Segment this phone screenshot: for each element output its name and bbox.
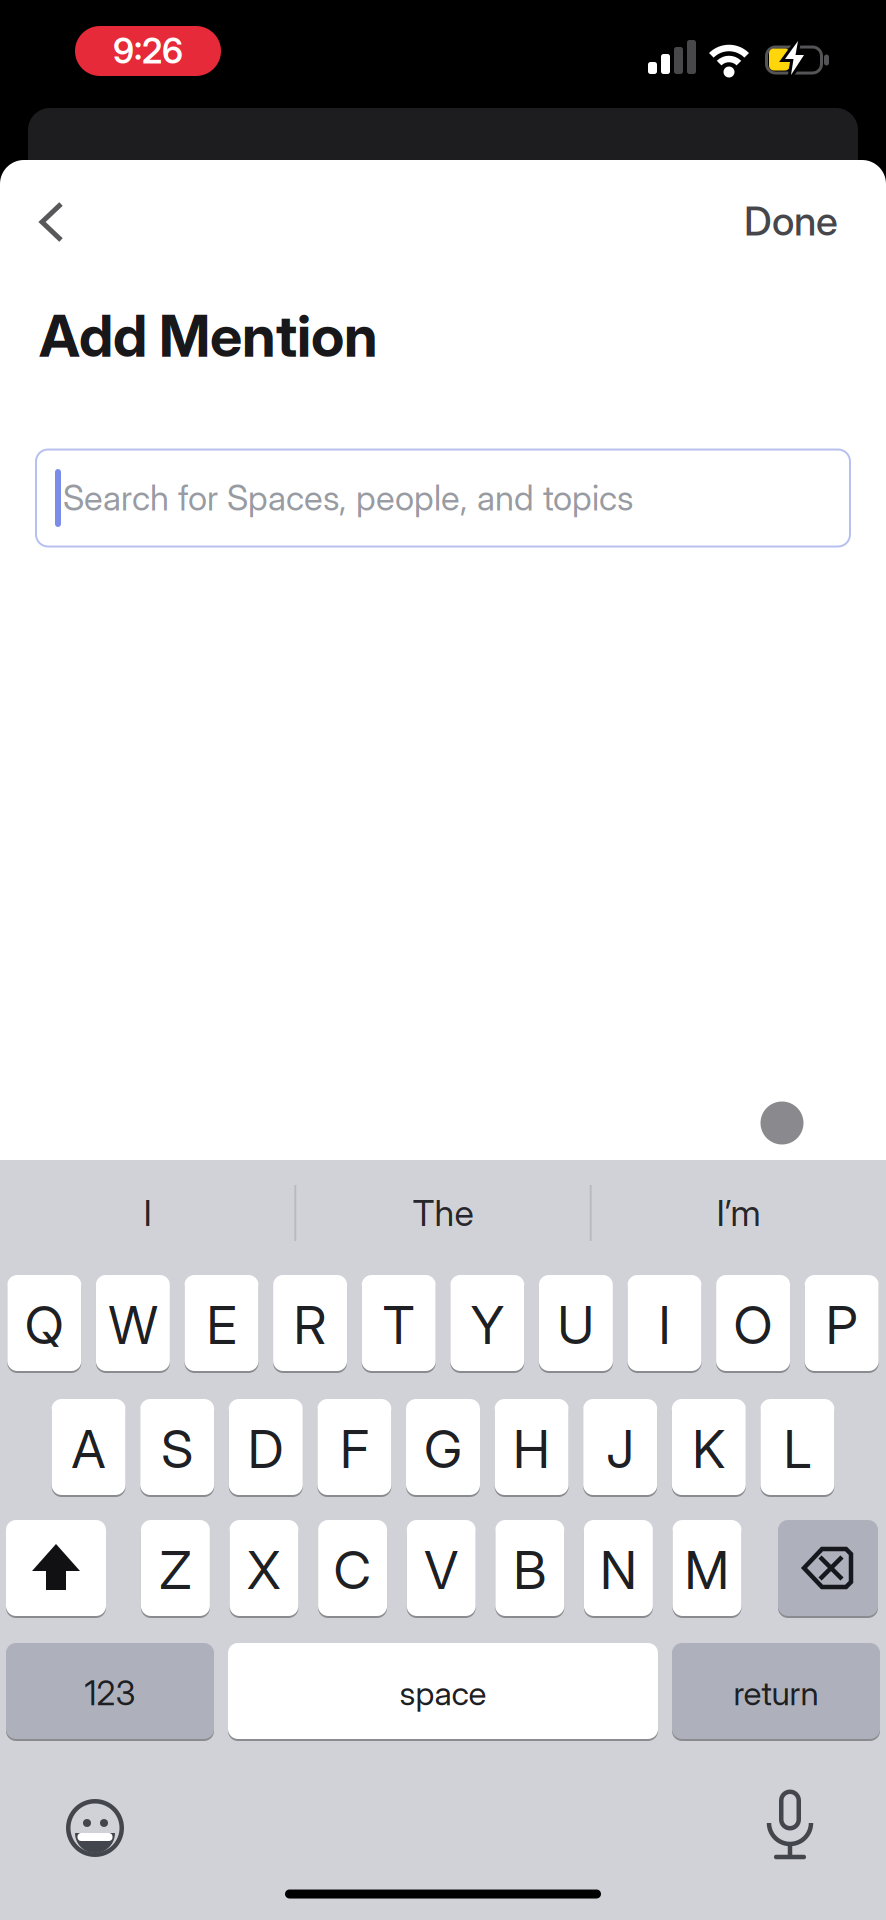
button[interactable]: Emoji: [62, 1795, 128, 1861]
button[interactable]: X: [229, 1520, 298, 1616]
button[interactable]: J: [583, 1399, 657, 1495]
button[interactable]: I: [627, 1275, 701, 1371]
button[interactable]: E: [184, 1275, 258, 1371]
staticText: G: [424, 1418, 462, 1480]
button[interactable]: O: [716, 1275, 790, 1371]
button[interactable]: G: [406, 1399, 480, 1495]
staticText: I’m: [716, 1192, 760, 1234]
staticText: 9:26: [113, 31, 183, 71]
staticText: M: [684, 1539, 729, 1601]
staticText: U: [557, 1294, 594, 1356]
staticText: I: [658, 1294, 670, 1356]
staticText: N: [600, 1539, 637, 1601]
button[interactable]: Dictate: [757, 1787, 823, 1861]
staticText: space: [399, 1673, 486, 1713]
staticText: Add Mention: [39, 302, 378, 370]
staticText: return: [733, 1673, 818, 1713]
staticText: V: [424, 1539, 458, 1601]
staticText: P: [826, 1294, 858, 1356]
staticText: Y: [471, 1294, 504, 1356]
button[interactable]: I’m: [593, 1158, 883, 1268]
button[interactable]: Done: [744, 197, 838, 245]
staticText: Q: [25, 1294, 64, 1356]
button[interactable]: T: [362, 1275, 436, 1371]
button[interactable]: W: [96, 1275, 170, 1371]
staticText: W: [108, 1294, 157, 1356]
button[interactable]: Shift: [6, 1520, 106, 1616]
button[interactable]: space: [228, 1643, 658, 1739]
staticText: Z: [159, 1539, 191, 1601]
button[interactable]: Delete: [778, 1520, 878, 1616]
staticText: E: [206, 1294, 236, 1356]
staticText: T: [383, 1294, 415, 1356]
staticText: S: [161, 1418, 193, 1480]
button[interactable]: Back: [29, 200, 73, 244]
staticText: L: [783, 1418, 811, 1480]
button[interactable]: Z: [141, 1520, 210, 1616]
button[interactable]: N: [584, 1520, 653, 1616]
staticText: Search for Spaces, people, and topics: [63, 478, 633, 518]
staticText: K: [692, 1418, 725, 1480]
button[interactable]: S: [140, 1399, 214, 1495]
staticText: R: [294, 1294, 327, 1356]
staticText: F: [340, 1418, 369, 1480]
staticText: O: [734, 1294, 773, 1356]
button[interactable]: V: [407, 1520, 476, 1616]
staticText: Done: [744, 197, 838, 245]
button[interactable]: H: [495, 1399, 569, 1495]
button[interactable]: Search for Spaces, people, and topics: [35, 448, 851, 547]
button[interactable]: Q: [7, 1275, 81, 1371]
staticText: X: [247, 1539, 281, 1601]
button[interactable]: 123: [6, 1643, 214, 1739]
button[interactable]: D: [229, 1399, 303, 1495]
button[interactable]: L: [760, 1399, 834, 1495]
button[interactable]: A: [52, 1399, 126, 1495]
button[interactable]: C: [318, 1520, 387, 1616]
button[interactable]: P: [805, 1275, 879, 1371]
button[interactable]: K: [672, 1399, 746, 1495]
button[interactable]: B: [495, 1520, 564, 1616]
staticText: H: [513, 1418, 550, 1480]
button[interactable]: U: [539, 1275, 613, 1371]
staticText: I: [144, 1192, 152, 1234]
staticText: A: [72, 1418, 106, 1480]
staticText: The: [412, 1192, 473, 1234]
button[interactable]: M: [672, 1520, 741, 1616]
button[interactable]: I: [3, 1158, 293, 1268]
button[interactable]: Y: [450, 1275, 524, 1371]
staticText: C: [334, 1539, 372, 1601]
staticText: J: [606, 1418, 634, 1480]
button[interactable]: R: [273, 1275, 347, 1371]
button[interactable]: F: [317, 1399, 391, 1495]
staticText: B: [513, 1539, 546, 1601]
staticText: D: [248, 1418, 284, 1480]
button[interactable]: return: [672, 1643, 880, 1739]
button[interactable]: The: [298, 1158, 588, 1268]
staticText: 123: [84, 1673, 135, 1713]
